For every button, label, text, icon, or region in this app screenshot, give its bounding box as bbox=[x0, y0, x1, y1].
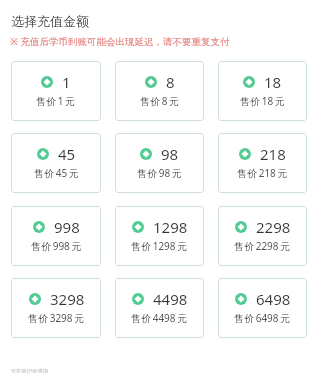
staticText: 3298 bbox=[50, 289, 85, 309]
staticText: 售价 18 元 bbox=[240, 94, 285, 108]
button[interactable]: 1 bbox=[11, 61, 101, 121]
button[interactable]: 98 bbox=[115, 133, 204, 193]
button[interactable]: 8 bbox=[115, 61, 204, 121]
button[interactable]: 218 bbox=[218, 133, 307, 193]
staticText: 售价 1 元 bbox=[36, 94, 76, 108]
staticText: 售价 2298 元 bbox=[234, 239, 291, 253]
button[interactable]: 998 bbox=[11, 206, 101, 266]
button[interactable]: 45 bbox=[11, 133, 101, 193]
staticText: 售价 3298 元 bbox=[28, 311, 85, 325]
button[interactable]: 4498 bbox=[115, 278, 204, 338]
staticText: 售价 218 元 bbox=[237, 166, 288, 180]
staticText: 售价 6498 元 bbox=[234, 311, 291, 325]
staticText: 6498 bbox=[256, 289, 291, 309]
staticText: 售价 1298 元 bbox=[131, 239, 188, 253]
staticText: 98 bbox=[161, 144, 179, 164]
staticText: 售价 45 元 bbox=[34, 166, 79, 180]
button[interactable]: 2298 bbox=[218, 206, 307, 266]
button[interactable]: 6498 bbox=[218, 278, 307, 338]
button[interactable]: 1298 bbox=[115, 206, 204, 266]
staticText: 售价 4498 元 bbox=[131, 311, 188, 325]
button[interactable]: 18 bbox=[218, 61, 307, 121]
staticText: 售价 8 元 bbox=[140, 94, 180, 108]
staticText: 18 bbox=[264, 72, 282, 92]
staticText: 2298 bbox=[256, 217, 291, 237]
button[interactable]: 3298 bbox=[11, 278, 101, 338]
staticText: 售价 998 元 bbox=[31, 239, 82, 253]
staticText: 售价 98 元 bbox=[137, 166, 182, 180]
staticText: ※ 充值后学币到账可能会出现延迟，请不要重复支付 bbox=[10, 35, 230, 48]
staticText: 4498 bbox=[153, 289, 188, 309]
staticText: 1298 bbox=[153, 217, 188, 237]
staticText: 1 bbox=[62, 72, 71, 92]
staticText: 选择充值金额 bbox=[11, 13, 89, 29]
staticText: 8 bbox=[166, 72, 175, 92]
staticText: 998 bbox=[54, 217, 80, 237]
staticText: ※充值记录查询 bbox=[11, 367, 49, 373]
staticText: 45 bbox=[58, 144, 76, 164]
staticText: 218 bbox=[260, 144, 286, 164]
